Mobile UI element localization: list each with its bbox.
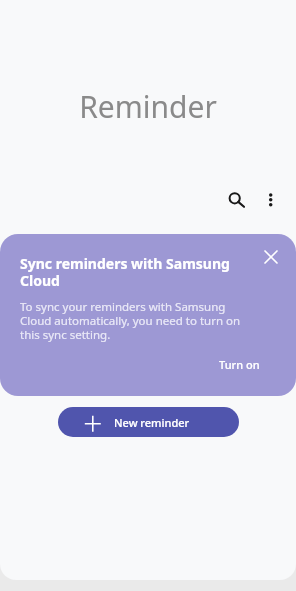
staticText: To sync your reminders with Samsung Clou… <box>20 299 248 342</box>
button[interactable]: Search <box>220 181 252 213</box>
staticText: New reminder <box>114 415 190 430</box>
staticText: Sync reminders with Samsung Cloud <box>20 254 248 290</box>
button[interactable]: Turn on <box>219 357 260 372</box>
button[interactable]: New reminder <box>58 407 239 437</box>
button[interactable]: More options <box>254 181 286 213</box>
staticText: Turn on <box>219 357 260 372</box>
staticText: Reminder <box>0 86 296 127</box>
button[interactable]: Close <box>259 245 283 269</box>
button[interactable]: Sync reminders with Samsung Cloud <box>0 234 296 396</box>
